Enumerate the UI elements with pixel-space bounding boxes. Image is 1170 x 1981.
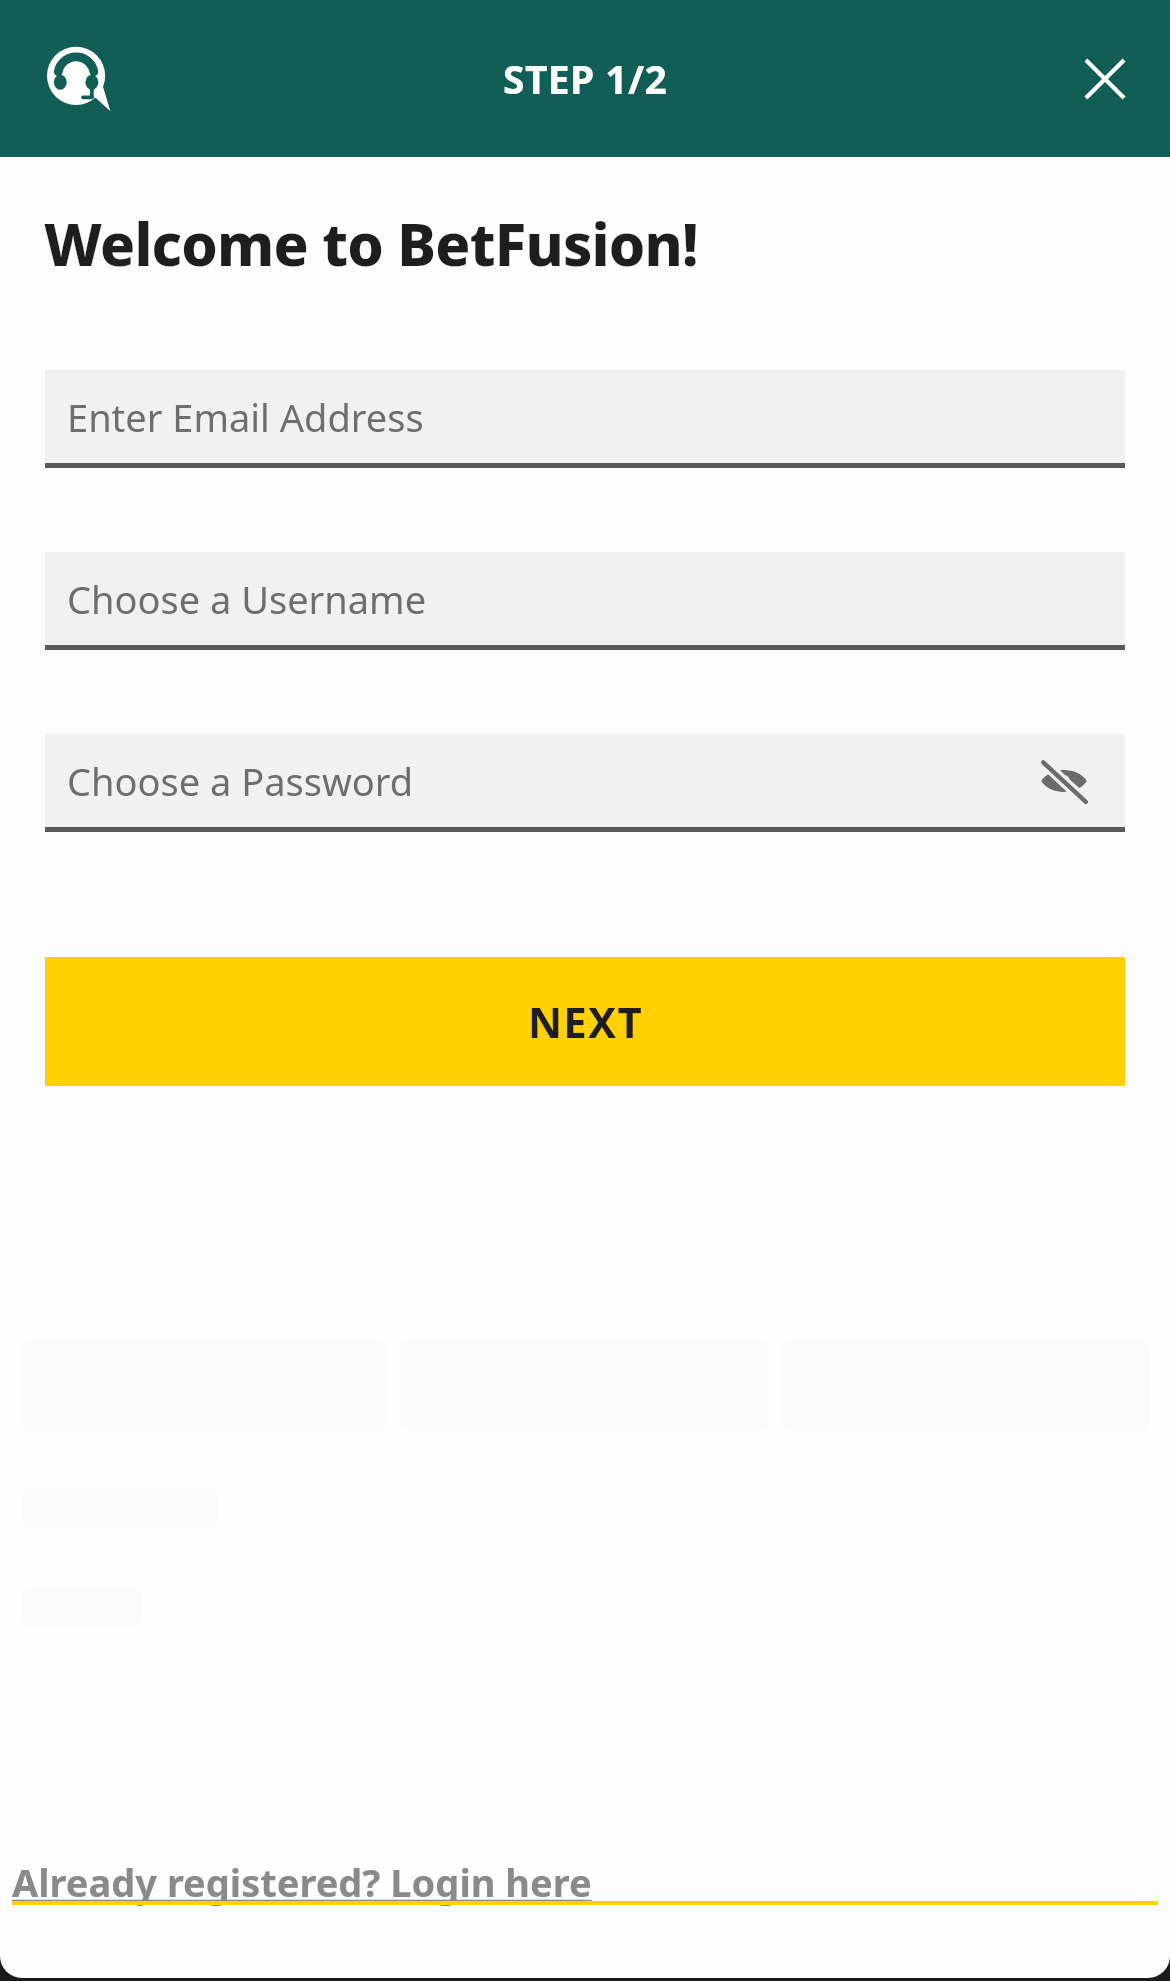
button[interactable]: Already registered? Login here — [0, 1848, 1170, 1916]
staticText: Enter Email Address — [67, 391, 424, 443]
staticText: NEXT — [528, 993, 643, 1050]
staticText: Choose a Password — [67, 755, 414, 807]
button[interactable]: NEXT — [45, 957, 1125, 1086]
button[interactable]: Choose a Username — [45, 552, 1125, 650]
button[interactable]: Support chat — [46, 47, 110, 111]
button[interactable]: Close — [1068, 42, 1142, 116]
button[interactable]: Show password — [1033, 750, 1095, 812]
staticText: STEP 1/2 — [503, 52, 668, 105]
staticText: Choose a Username — [67, 573, 427, 625]
button[interactable]: Enter Email Address — [45, 370, 1125, 468]
button[interactable]: Choose a Password — [45, 734, 1125, 832]
staticText: Welcome to BetFusion! — [44, 204, 698, 283]
staticText: Already registered? Login here — [12, 1856, 592, 1908]
